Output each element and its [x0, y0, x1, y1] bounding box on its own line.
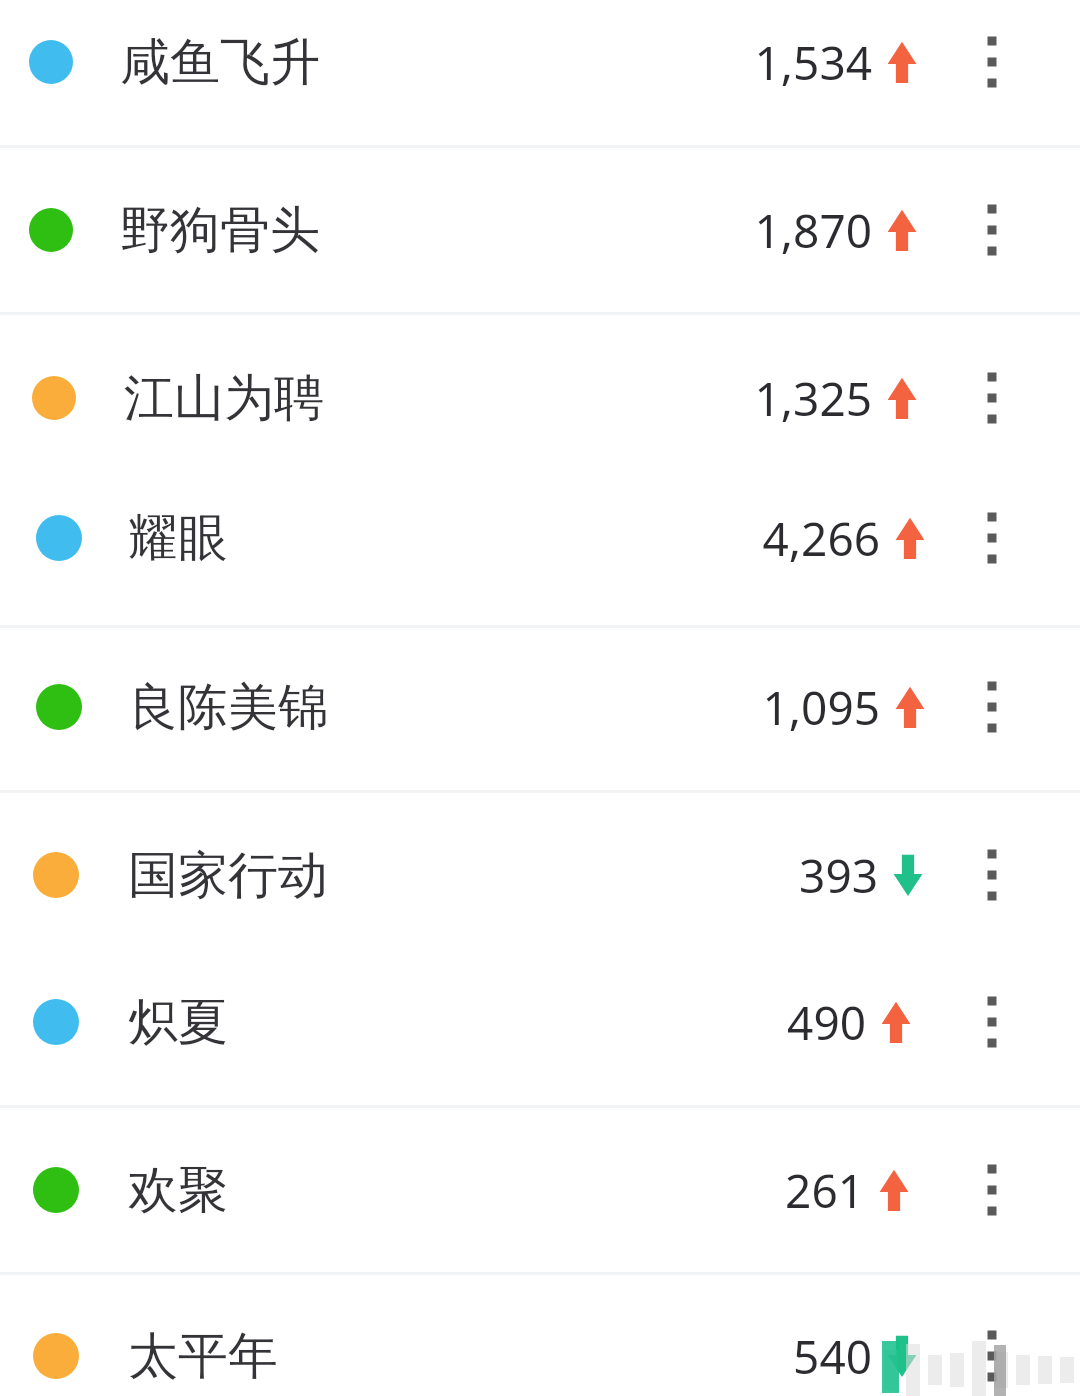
button[interactable]: 耀眼 — [0, 463, 1080, 613]
staticText: 国家行动 — [128, 844, 328, 907]
button[interactable]: 国家行动 — [0, 800, 1080, 950]
staticText: 良陈美锦 — [128, 676, 328, 739]
staticText: 1,870 — [612, 199, 872, 262]
button[interactable]: More options — [960, 659, 1024, 755]
button[interactable]: 欢聚 — [0, 1115, 1080, 1265]
button[interactable]: 江山为聘 — [0, 323, 1080, 473]
staticText: 欢聚 — [128, 1159, 228, 1222]
staticText: 261 — [604, 1159, 864, 1222]
button[interactable]: More options — [960, 14, 1024, 110]
staticText: 393 — [618, 844, 878, 907]
button[interactable]: More options — [960, 490, 1024, 586]
button[interactable]: 野狗骨头 — [0, 155, 1080, 305]
button[interactable]: 咸鱼飞升 — [0, 0, 1080, 137]
staticText: 炽夏 — [128, 991, 228, 1054]
button[interactable]: 太平年 — [0, 1281, 1080, 1396]
staticText: 1,095 — [620, 676, 880, 739]
staticText: 1,325 — [612, 367, 872, 430]
button[interactable]: More options — [960, 182, 1024, 278]
button[interactable]: 炽夏 — [0, 947, 1080, 1097]
button[interactable]: More options — [960, 974, 1024, 1070]
button[interactable]: 良陈美锦 — [0, 632, 1080, 782]
staticText: 野狗骨头 — [120, 199, 320, 262]
staticText: 太平年 — [128, 1325, 278, 1388]
staticText: 540 — [612, 1325, 872, 1388]
button[interactable]: More options — [960, 827, 1024, 923]
staticText: 咸鱼飞升 — [120, 31, 320, 94]
staticText: 江山为聘 — [124, 367, 324, 430]
staticText: 4,266 — [620, 507, 880, 570]
button[interactable]: More options — [960, 1142, 1024, 1238]
staticText: 1,534 — [612, 31, 872, 94]
button[interactable]: More options — [960, 1308, 1024, 1396]
button[interactable]: More options — [960, 350, 1024, 446]
staticText: 耀眼 — [128, 507, 228, 570]
staticText: 490 — [606, 991, 866, 1054]
